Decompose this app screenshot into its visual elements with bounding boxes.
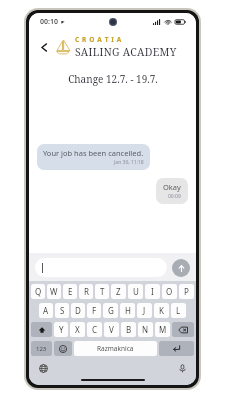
staticText: W: [50, 286, 58, 297]
staticText: N: [142, 324, 149, 335]
button[interactable]: B: [121, 322, 136, 337]
staticText: A: [43, 305, 49, 316]
staticText: F: [92, 305, 97, 316]
staticText: L: [176, 305, 181, 316]
staticText: V: [109, 324, 114, 335]
button[interactable]: T: [95, 284, 109, 299]
staticText: Jan 30, 11:18: [114, 159, 144, 166]
button[interactable]: Q: [31, 284, 45, 299]
button[interactable]: Razmaknica: [74, 341, 157, 356]
button[interactable]: W: [47, 284, 61, 299]
staticText: 00:10: [40, 17, 58, 27]
staticText: Razmaknica: [97, 344, 134, 353]
staticText: O: [166, 286, 173, 297]
button[interactable]: Change language: [35, 360, 51, 376]
staticText: E: [68, 286, 73, 297]
button[interactable]: 123: [31, 341, 52, 356]
button[interactable]: L: [171, 303, 186, 318]
button[interactable]: E: [63, 284, 77, 299]
staticText: T: [100, 286, 105, 297]
button[interactable]: A: [39, 303, 53, 318]
staticText: U: [133, 286, 139, 297]
staticText: 123: [36, 345, 47, 353]
staticText: Z: [116, 286, 121, 297]
button[interactable]: N: [138, 322, 153, 337]
button[interactable]: [35, 258, 167, 277]
staticText: K: [159, 305, 164, 316]
button[interactable]: Shift: [31, 322, 52, 337]
button[interactable]: V: [104, 322, 119, 337]
staticText: SAILING ACADEMY: [75, 45, 177, 59]
staticText: B: [126, 324, 132, 335]
staticText: D: [75, 305, 81, 316]
staticText: Q: [35, 286, 42, 297]
staticText: Change 12.7. - 19.7.: [68, 72, 158, 86]
button[interactable]: Your job has been cancelled.: [37, 144, 150, 170]
button[interactable]: X: [70, 322, 85, 337]
button[interactable]: H: [120, 303, 135, 318]
button[interactable]: U: [128, 284, 143, 299]
staticText: 00:09: [168, 193, 181, 200]
staticText: Okay: [163, 182, 181, 192]
staticText: S: [60, 305, 65, 316]
staticText: P: [184, 286, 189, 297]
button[interactable]: Backspace: [172, 322, 194, 337]
staticText: Your job has been cancelled.: [43, 148, 144, 158]
button[interactable]: Z: [111, 284, 126, 299]
staticText: C: [92, 324, 98, 335]
button[interactable]: Voice input: [174, 360, 190, 376]
button[interactable]: F: [87, 303, 101, 318]
button[interactable]: R: [79, 284, 93, 299]
staticText: G: [108, 305, 114, 316]
staticText: I: [151, 286, 154, 297]
button[interactable]: Enter: [159, 341, 194, 356]
button[interactable]: I: [145, 284, 160, 299]
button[interactable]: M: [155, 322, 170, 337]
button[interactable]: Okay: [156, 178, 188, 204]
button[interactable]: Back: [33, 36, 55, 58]
button[interactable]: Y: [54, 322, 68, 337]
staticText: C R O A T I A: [75, 35, 122, 44]
staticText: H: [125, 305, 131, 316]
button[interactable]: D: [71, 303, 85, 318]
staticText: M: [159, 324, 167, 335]
staticText: R: [84, 286, 89, 297]
button[interactable]: K: [154, 303, 169, 318]
button[interactable]: Send: [172, 259, 190, 277]
button[interactable]: O: [162, 284, 177, 299]
button[interactable]: P: [179, 284, 194, 299]
staticText: J: [143, 305, 146, 316]
button[interactable]: Emoji: [54, 341, 72, 356]
button[interactable]: C: [87, 322, 102, 337]
staticText: X: [75, 324, 80, 335]
button[interactable]: J: [137, 303, 152, 318]
button[interactable]: S: [55, 303, 69, 318]
button[interactable]: G: [103, 303, 118, 318]
staticText: Y: [59, 324, 64, 335]
button[interactable]: C R O A T I A: [55, 35, 177, 59]
